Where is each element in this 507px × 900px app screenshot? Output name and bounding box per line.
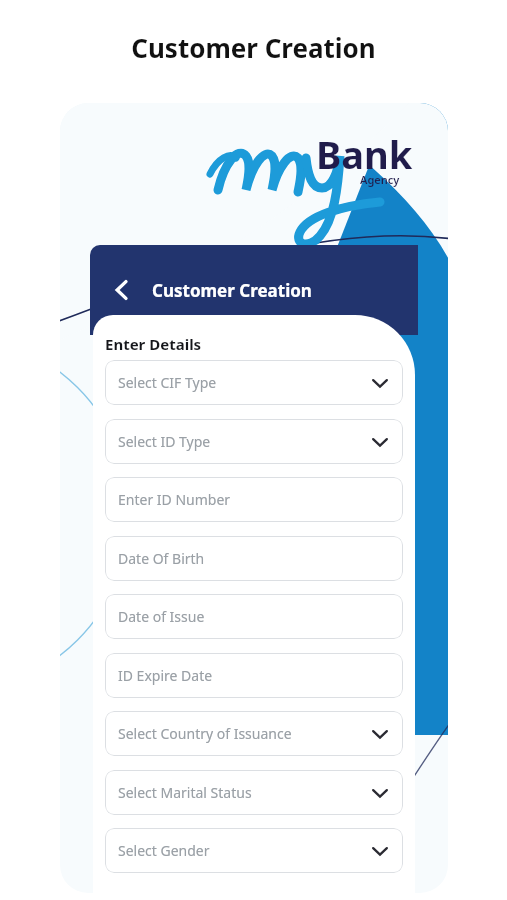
button[interactable]: Select ID Type [105,419,403,464]
staticText: Select ID Type [118,432,211,451]
staticText: Select CIF Type [118,373,217,392]
staticText: Date Of Birth [118,549,205,568]
staticText: Customer Creation [0,30,507,65]
staticText: Select Marital Status [118,783,252,802]
staticText: Enter ID Number [118,490,231,509]
button[interactable]: Select Marital Status [105,770,403,815]
button[interactable]: Date Of Birth [105,536,403,581]
button[interactable]: Select CIF Type [105,360,403,405]
button[interactable]: Enter ID Number [105,477,403,522]
button[interactable]: Date of Issue [105,594,403,639]
staticText: Enter Details [105,334,202,354]
staticText: ID Expire Date [118,666,213,685]
staticText: Customer Creation [152,279,312,302]
button[interactable]: Select Country of Issuance [105,711,403,756]
button[interactable]: Back [100,268,144,312]
staticText: Date of Issue [118,607,205,626]
staticText: Select Gender [118,841,210,860]
button[interactable]: Select Gender [105,828,403,873]
staticText: Select Country of Issuance [118,724,292,743]
button[interactable]: ID Expire Date [105,653,403,698]
staticText: Bank [316,128,413,180]
staticText: Agency [360,172,400,187]
